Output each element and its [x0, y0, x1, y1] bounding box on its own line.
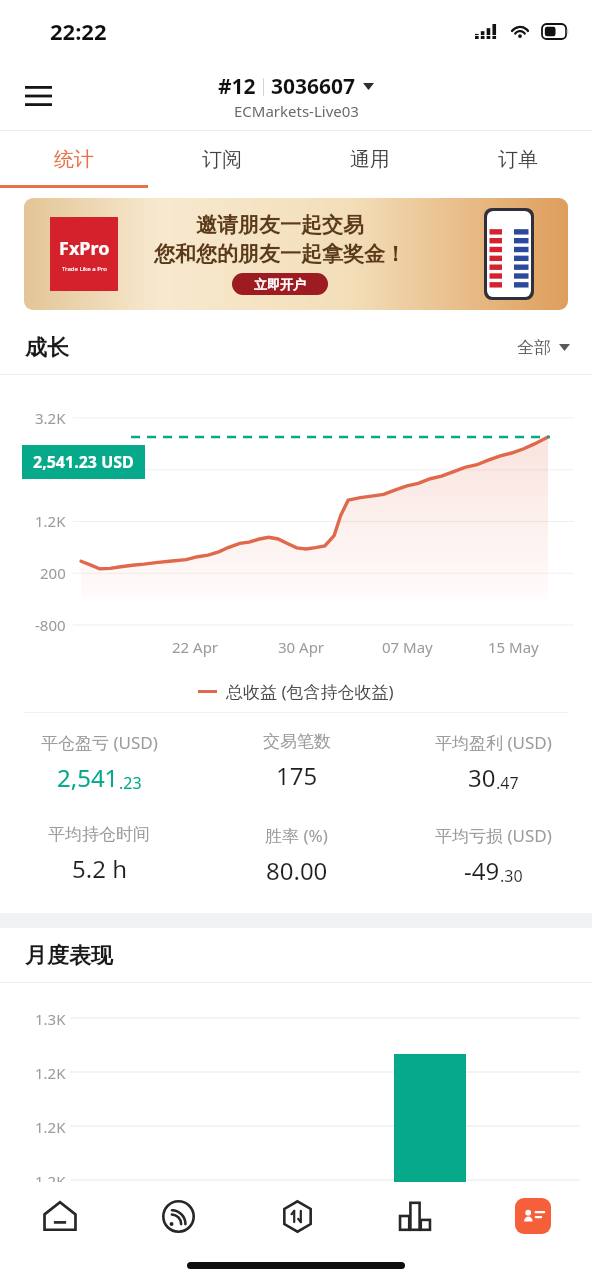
- staticText: .47: [496, 772, 519, 794]
- staticText: 1.2K: [35, 1171, 66, 1191]
- staticText: 1.2K: [35, 511, 66, 531]
- button[interactable]: 全部: [517, 337, 570, 358]
- staticText: 175: [276, 759, 318, 792]
- staticText: 2,541: [57, 761, 119, 794]
- staticText: #12: [218, 72, 256, 101]
- staticText: 您和您的朋友一起拿奖金！: [154, 241, 406, 267]
- button[interactable]: FxPro: [24, 198, 568, 310]
- button[interactable]: #12: [218, 72, 374, 121]
- staticText: 30 Apr: [278, 637, 325, 657]
- staticText: 平均亏损 (USD): [435, 824, 552, 847]
- staticText: 胜率 (%): [265, 824, 328, 847]
- staticText: 平仓盈亏 (USD): [41, 731, 158, 754]
- staticText: FxPro: [59, 236, 110, 261]
- staticText: 07 May: [382, 637, 433, 657]
- staticText: 平均盈利 (USD): [435, 731, 552, 754]
- staticText: 立即开户: [254, 276, 306, 292]
- staticText: 邀请朋友一起交易: [196, 212, 364, 238]
- staticText: 3036607: [271, 72, 356, 101]
- button[interactable]: Statistics: [356, 1182, 474, 1250]
- staticText: 统计: [54, 147, 94, 172]
- staticText: 80.00: [266, 854, 328, 887]
- button[interactable]: Trade: [238, 1182, 356, 1250]
- staticText: 全部: [517, 337, 551, 358]
- staticText: 1.2K: [35, 1063, 66, 1083]
- staticText: 22 Apr: [172, 637, 219, 657]
- staticText: 2.2K: [35, 460, 66, 480]
- staticText: 200: [40, 563, 66, 583]
- button[interactable]: 订单: [444, 130, 592, 188]
- button[interactable]: 通用: [296, 130, 444, 188]
- staticText: 22:22: [50, 16, 107, 46]
- staticText: .30: [500, 865, 523, 887]
- staticText: 1.2K: [35, 1117, 66, 1137]
- staticText: 2,541.23 USD: [33, 451, 134, 473]
- staticText: 订阅: [202, 147, 242, 172]
- staticText: 15 May: [488, 637, 539, 657]
- staticText: 平均持仓时间: [48, 824, 150, 845]
- staticText: -800: [35, 615, 66, 635]
- staticText: 1.3K: [35, 1009, 66, 1029]
- button[interactable]: Home: [0, 1182, 119, 1250]
- staticText: ECMarkets-Live03: [234, 101, 359, 121]
- button[interactable]: Profile: [474, 1182, 592, 1250]
- staticText: -49: [464, 854, 500, 887]
- staticText: 成长: [25, 334, 69, 362]
- staticText: 5.2 h: [72, 852, 127, 885]
- staticText: 通用: [350, 147, 390, 172]
- staticText: 总收益 (包含持仓收益): [226, 680, 394, 703]
- staticText: 月度表现: [25, 942, 113, 970]
- button[interactable]: Menu: [13, 71, 63, 121]
- staticText: .23: [119, 772, 142, 794]
- staticText: 订单: [498, 147, 538, 172]
- staticText: 交易笔数: [263, 731, 331, 752]
- button[interactable]: 订阅: [148, 130, 296, 188]
- staticText: 30: [468, 761, 496, 794]
- button[interactable]: Signals: [119, 1182, 238, 1250]
- staticText: Trade Like a Pro: [62, 265, 107, 273]
- button[interactable]: 统计: [0, 130, 148, 188]
- staticText: 3.2K: [35, 408, 66, 428]
